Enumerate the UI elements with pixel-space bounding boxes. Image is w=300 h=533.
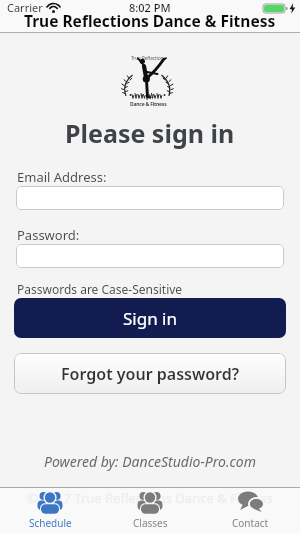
- staticText: True Reflections: [131, 55, 166, 62]
- staticText: Passwords are Case-Sensitive: [17, 281, 183, 297]
- staticText: Schedule: [29, 516, 72, 530]
- staticText: True Reflections Dance & Fitness: [24, 10, 276, 31]
- staticText: Dance & Fitness: [130, 101, 167, 108]
- staticText: © 2017 True Reflections Dance & Fitness: [27, 489, 273, 507]
- staticText: Password:: [17, 226, 80, 244]
- staticText: Carrier: [7, 0, 43, 15]
- staticText: 8:02 PM: [129, 0, 171, 15]
- staticText: Forgot your password?: [61, 363, 240, 385]
- staticText: Contact: [232, 516, 269, 530]
- staticText: Please sign in: [65, 116, 235, 150]
- staticText: Sign in: [123, 307, 177, 330]
- staticText: Email Address:: [17, 168, 107, 186]
- staticText: Powered by: DanceStudio-Pro.com: [44, 452, 256, 471]
- staticText: Classes: [133, 516, 168, 530]
